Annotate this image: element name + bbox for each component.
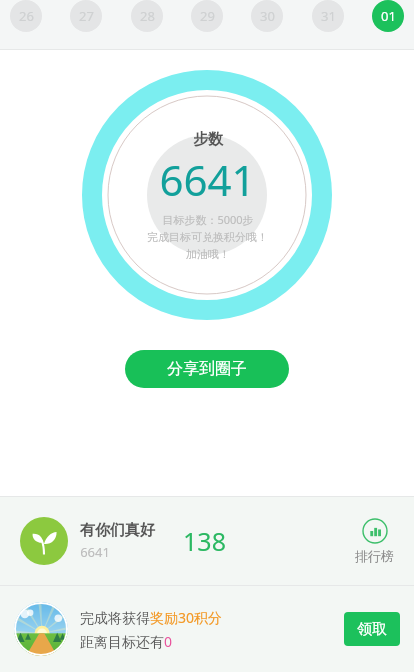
staticText: 28 bbox=[140, 7, 155, 25]
staticText: 领取 bbox=[357, 620, 387, 639]
staticText: 31 bbox=[321, 7, 336, 25]
button[interactable]: 28 bbox=[131, 0, 163, 32]
button[interactable]: 26 bbox=[10, 0, 42, 32]
staticText: 分享到圈子 bbox=[167, 359, 247, 379]
button[interactable]: 30 bbox=[251, 0, 283, 32]
other: 排行榜 bbox=[362, 518, 388, 544]
staticText: 步数 bbox=[193, 130, 223, 149]
button[interactable]: 分享到圈子 bbox=[125, 350, 289, 388]
staticText: 138 bbox=[183, 524, 226, 558]
staticText: 目标步数：5000步 bbox=[162, 212, 254, 227]
staticText: 距离目标还有0 bbox=[80, 632, 173, 651]
button[interactable]: 排行榜 bbox=[355, 518, 394, 564]
staticText: 01 bbox=[381, 7, 396, 25]
button[interactable]: 领取 bbox=[344, 612, 400, 646]
staticText: 6641 bbox=[80, 543, 110, 561]
staticText: 6641 bbox=[159, 151, 256, 208]
staticText: 27 bbox=[79, 7, 94, 25]
button[interactable]: 31 bbox=[312, 0, 344, 32]
staticText: 完成将获得奖励30积分 bbox=[80, 608, 223, 627]
button[interactable] bbox=[14, 602, 68, 656]
staticText: 排行榜 bbox=[355, 548, 394, 564]
button[interactable]: 29 bbox=[191, 0, 223, 32]
staticText: 有你们真好 bbox=[80, 521, 155, 540]
button[interactable]: 有你们真好 bbox=[0, 497, 414, 585]
staticText: 30 bbox=[260, 7, 275, 25]
staticText: 完成目标可兑换积分哦！ bbox=[147, 230, 268, 244]
staticText: 加油哦！ bbox=[186, 247, 230, 261]
button[interactable]: 27 bbox=[70, 0, 102, 32]
button[interactable]: 01 bbox=[372, 0, 404, 32]
staticText: 29 bbox=[200, 7, 215, 25]
staticText: 26 bbox=[19, 7, 34, 25]
